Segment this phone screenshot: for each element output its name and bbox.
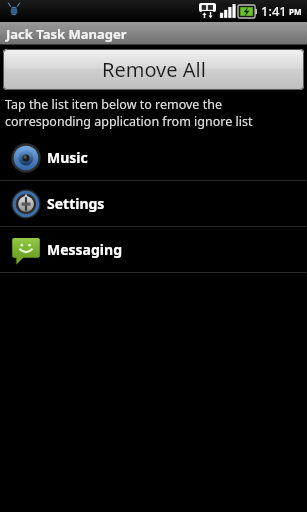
other: Messaging [11, 235, 41, 265]
staticText: Settings [47, 194, 105, 213]
staticText: Remove All [102, 56, 206, 83]
button[interactable]: Messaging [0, 227, 307, 272]
other: Music [11, 143, 41, 173]
other: Settings [11, 189, 41, 219]
button[interactable]: Remove All [3, 49, 304, 90]
button[interactable]: Music [0, 135, 307, 180]
staticText: Tap the list item below to remove the co… [5, 96, 302, 129]
staticText: 1:41 [261, 2, 287, 20]
staticText: PM [289, 6, 302, 17]
staticText: Jack Task Manager [6, 25, 127, 43]
button[interactable]: Settings [0, 181, 307, 226]
staticText: Messaging [47, 240, 122, 259]
staticText: Music [47, 148, 88, 167]
